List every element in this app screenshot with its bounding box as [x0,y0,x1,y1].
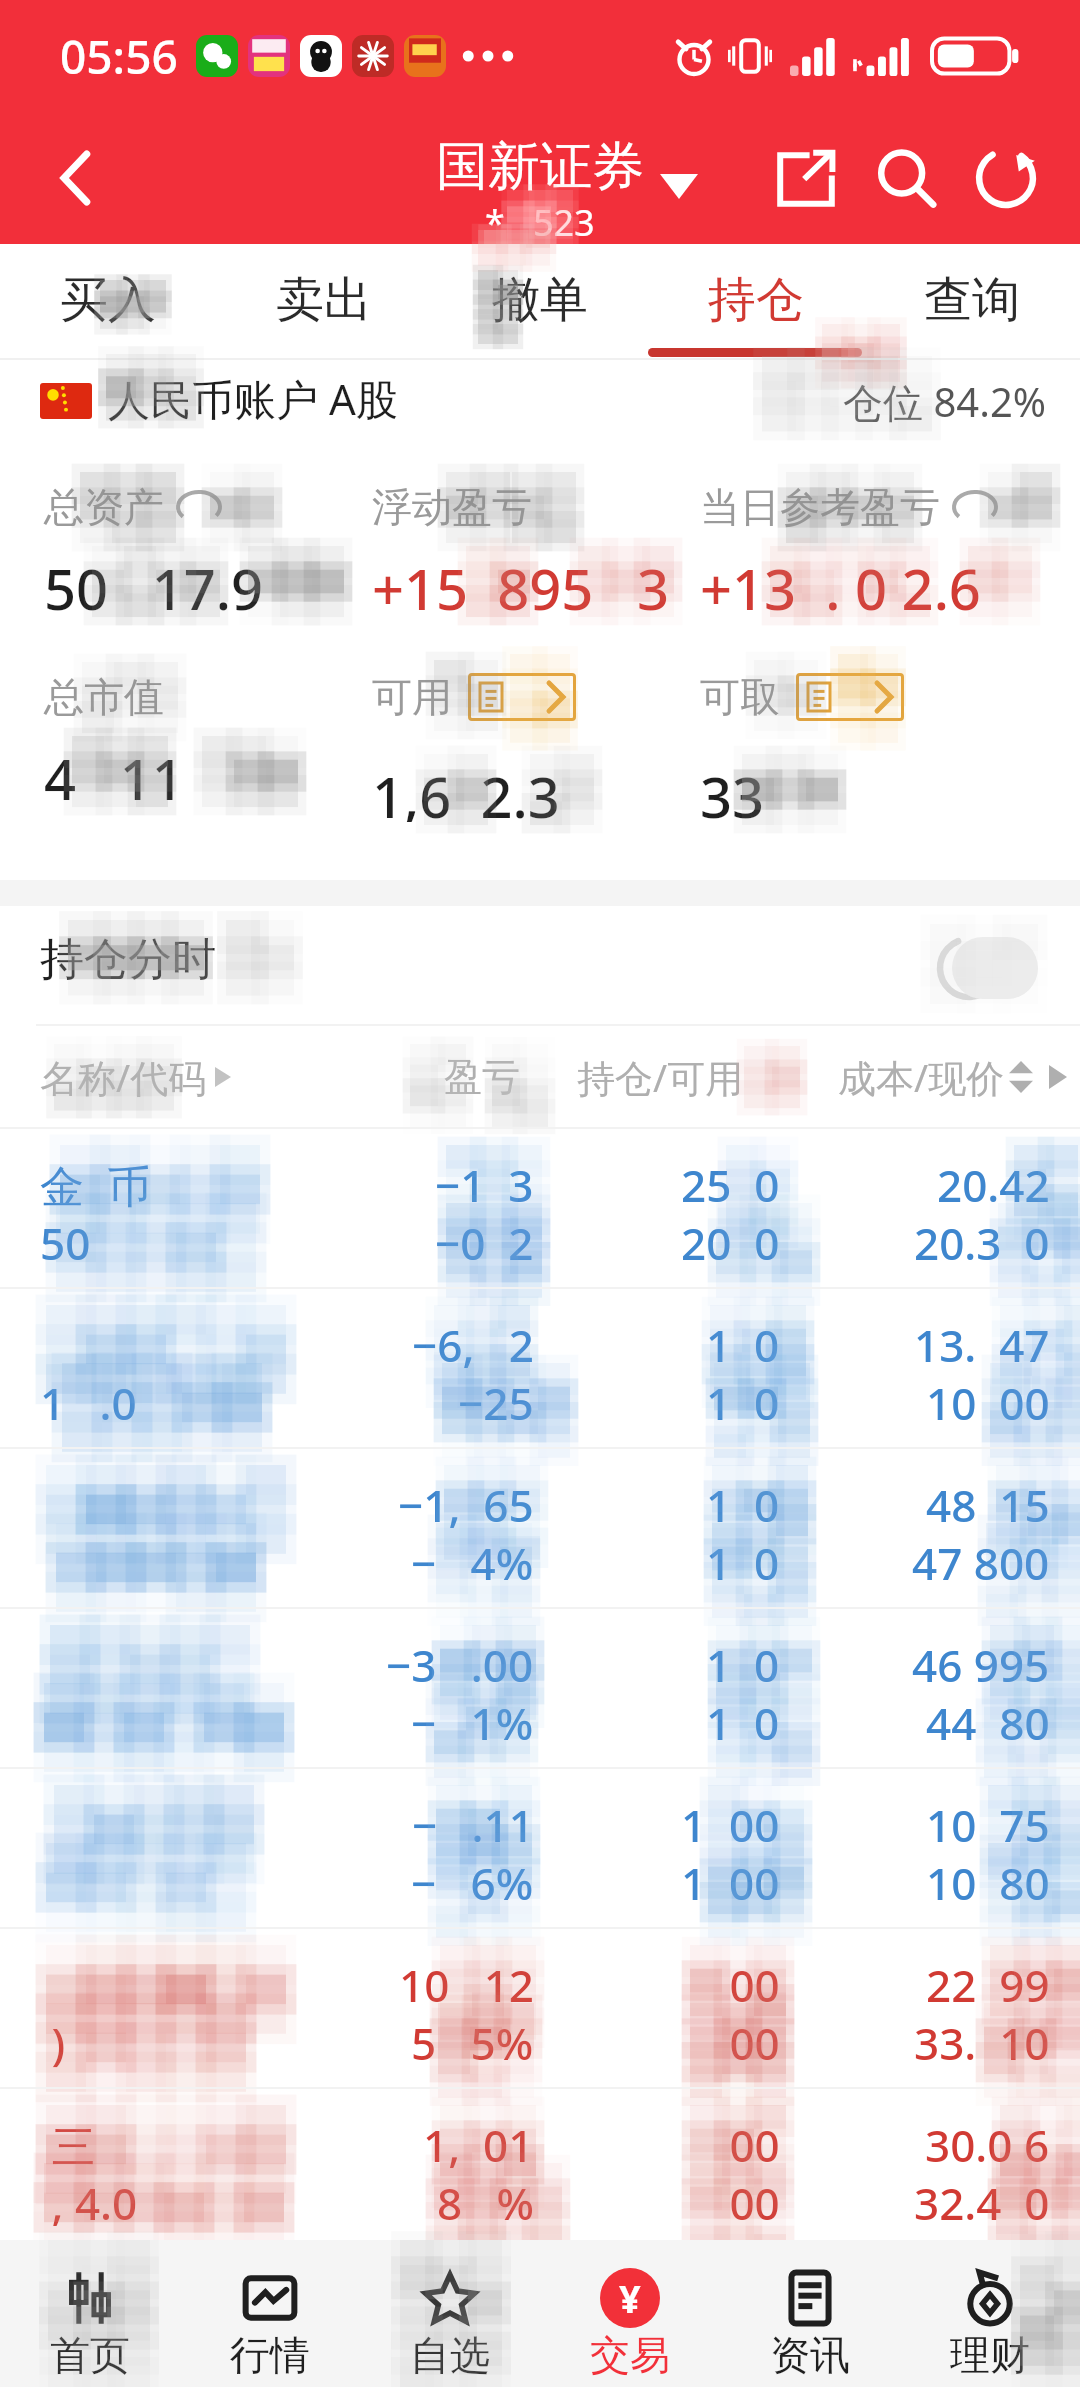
button[interactable]: Refresh holdings [894,930,1044,1006]
staticText: 20.42 [937,1155,1050,1211]
staticText: 25 0 [681,1155,780,1211]
staticText: 资讯 [770,2330,850,2380]
staticText: − 1% [411,1693,534,1749]
staticText: +15 895 3 [372,550,670,626]
staticText [40,1795,86,1851]
staticText [40,1315,86,1371]
staticText [40,1475,86,1531]
staticText: 10 75 [926,1795,1050,1851]
button[interactable]: Transfer [468,673,576,721]
staticText: 44 80 [926,1693,1050,1749]
button[interactable]: 资讯 [720,2240,900,2387]
staticText: 名称/代码 [40,1051,207,1103]
button[interactable]: ¥ [540,2240,720,2387]
staticText: 买入 [60,270,156,330]
staticText: 20.3 0 [914,1213,1050,1269]
staticText: 00 [718,1955,780,2011]
staticText: 1 0 [706,1315,780,1371]
button[interactable]: 三 [0,2087,1080,2247]
button[interactable]: 自选 [360,2240,540,2387]
staticText: 查询 [924,270,1020,330]
staticText: 1 0 [706,1475,780,1531]
staticText: 48 15 [926,1475,1050,1531]
staticText: 1 0 [706,1533,780,1589]
button[interactable]: 金 币 [0,1127,1080,1287]
staticText: 10 80 [926,1853,1050,1909]
staticText: 47 800 [912,1533,1050,1589]
staticText: 三 [40,2115,119,2171]
staticText: −25 [458,1373,534,1429]
staticText [40,1955,86,2011]
staticText: 首页 [50,2330,130,2380]
staticText: −1 3 [435,1155,534,1211]
staticText: −1, 65 [398,1475,534,1531]
staticText: 持仓 [708,270,804,330]
button[interactable]: −3 .00 [0,1607,1080,1767]
staticText: −3 .00 [386,1635,534,1691]
staticText: * 523 [485,198,595,247]
button[interactable]: 卖出 [216,244,432,368]
staticText: 13. 47 [914,1315,1050,1371]
staticText: 05:56 [60,25,178,88]
button[interactable]: Transfer [796,673,904,721]
staticText: 自选 [410,2330,490,2380]
button[interactable]: −1, 65 [0,1447,1080,1607]
staticText: 可用 [372,672,452,722]
button[interactable]: 10 12 [0,1927,1080,2087]
staticText: 行情 [230,2330,310,2380]
button[interactable]: Share [756,128,856,228]
staticText: 5 5% [411,2013,534,2069]
staticText: 00 [718,2013,780,2069]
staticText: −6, 2 [412,1315,534,1371]
button[interactable]: 撤单 [432,244,648,368]
staticText: 32.4 0 [914,2173,1050,2229]
button[interactable]: 查询 [864,244,1080,368]
staticText: 1,6 2.3 [372,758,560,822]
button[interactable]: 理财 [900,2240,1080,2387]
staticText: 46 995 [912,1635,1050,1691]
staticText: 理财 [950,2330,1030,2380]
staticText: 10 00 [926,1373,1050,1429]
button[interactable]: 首页 [0,2240,180,2387]
staticText: 1 00 [681,1795,780,1851]
button[interactable]: Back [34,136,118,220]
staticText: 10 12 [399,1955,534,2011]
staticText: −0 2 [435,1213,534,1269]
staticText: 持仓/可用 [577,1051,744,1103]
staticText: 1, 01 [423,2115,534,2171]
staticText: − .11 [412,1795,534,1851]
staticText: +13 . 0 2.6 [700,550,981,626]
staticText [40,1533,75,1589]
button[interactable]: −6, 2 [0,1287,1080,1447]
staticText: 浮动盈亏 [372,482,532,532]
staticText: − 4% [411,1533,534,1589]
button[interactable]: − .11 [0,1767,1080,1927]
staticText: 00 [718,2115,780,2171]
staticText: 金 币 [40,1155,151,1211]
staticText: 当日参考盈亏 [700,482,940,532]
staticText: 33. 10 [914,2013,1050,2069]
staticText: − 6% [411,1853,534,1909]
staticText: 总资产 [44,482,164,532]
button[interactable]: Refresh [956,128,1056,228]
staticText: 33 [700,758,765,822]
staticText: 00 [718,2173,780,2229]
staticText: 1 00 [681,1853,780,1909]
staticText: 国新证券 [436,134,644,200]
staticText: 仓位 84.2% [843,374,1046,429]
staticText: 卖出 [276,270,372,330]
staticText: 撤单 [492,270,588,330]
staticText: 盈亏 [444,1053,520,1101]
button[interactable]: Search [856,128,956,228]
staticText: ¥ [619,2272,641,2324]
staticText: 20 0 [681,1213,780,1269]
staticText: 1 0 [706,1693,780,1749]
staticText: ) [40,2013,89,2069]
button[interactable]: 买入 [0,244,216,368]
button[interactable]: 行情 [180,2240,360,2387]
staticText [40,1635,86,1691]
staticText: 持仓分时 [40,932,216,987]
button[interactable]: 持仓 [648,244,864,368]
staticText: 总市值 [44,672,164,722]
staticText: 1 0 [706,1373,780,1429]
